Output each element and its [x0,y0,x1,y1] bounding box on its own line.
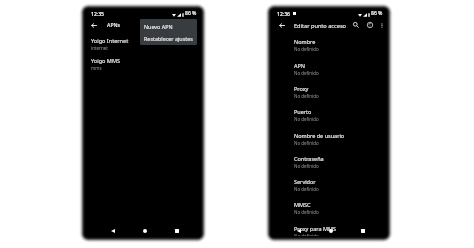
staticText: APNs [107,21,121,28]
button[interactable]: Help [365,20,375,30]
staticText: 86 % [371,10,383,17]
staticText: No definido [294,163,319,169]
staticText: No definido [294,93,319,99]
staticText: MMSC [294,201,311,208]
button[interactable]: Nuevo APN [140,20,197,32]
button[interactable]: APN [272,62,386,83]
staticText: No definido [294,70,319,76]
staticText: Yoigo MMS [91,57,120,65]
staticText: Contraseña [294,155,324,162]
button[interactable]: Home [139,225,150,236]
button[interactable]: Proxy para MMS [272,225,386,236]
staticText: Yoigo Internet [91,37,129,45]
staticText: No definido [294,233,319,236]
button[interactable]: MMSC [272,201,386,222]
staticText: 12:35 [91,11,104,18]
button[interactable]: Contraseña [272,155,386,176]
button[interactable]: More options [377,20,386,30]
button[interactable]: Back [107,225,118,236]
staticText: No definido [294,140,319,146]
button[interactable]: Recents [357,225,368,236]
staticText: Servidor [294,178,316,185]
button[interactable]: Puerto [272,108,386,129]
staticText: mms [91,65,102,71]
button[interactable]: Recents [171,225,182,236]
staticText: 86 % [185,10,197,17]
button[interactable]: Nombre [272,38,386,59]
staticText: No definido [294,186,319,192]
staticText: Proxy para MMS [294,225,336,232]
button[interactable]: Home [325,225,336,236]
staticText: internet [91,45,108,51]
button[interactable]: Back [89,20,99,30]
staticText: Editar punto acceso [294,22,346,30]
staticText: Proxy [294,85,309,92]
staticText: No definido [294,46,319,52]
staticText: Restablecer ajustes [144,35,193,42]
staticText: No definido [294,209,319,215]
button[interactable]: Back [277,20,287,30]
button[interactable]: Yoigo MMS [86,57,200,75]
staticText: Puerto [294,108,312,115]
staticText: 12:36 [277,11,290,18]
staticText: Nombre de usuario [294,132,345,139]
staticText: Nuevo APN [144,23,173,30]
staticText: APN [294,62,306,69]
button[interactable]: Nombre de usuario [272,132,386,153]
button[interactable]: Back [293,225,304,236]
button[interactable]: Proxy [272,85,386,106]
staticText: No definido [294,116,319,122]
button[interactable]: Servidor [272,178,386,199]
button[interactable]: Yoigo Internet [86,37,200,55]
button[interactable]: Search [351,20,361,30]
staticText: Nombre [294,38,316,45]
button[interactable]: Restablecer ajustes [140,32,197,44]
